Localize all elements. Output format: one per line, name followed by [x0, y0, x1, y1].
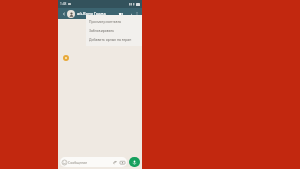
staticText: Просмотр контакта	[89, 19, 121, 24]
button[interactable]: Call	[125, 10, 132, 17]
button[interactable]: Просмотр контакта	[86, 17, 142, 26]
staticText: Добавить ярлык на экран	[89, 37, 132, 42]
button[interactable]: Send voice message	[129, 157, 140, 167]
button[interactable]: Заблокировать	[86, 26, 142, 35]
button[interactable]: Contact photo	[67, 10, 75, 18]
staticText: Сообщение	[68, 160, 88, 165]
button[interactable]: Сообщение	[60, 157, 127, 167]
staticText: Заблокировать	[89, 28, 115, 33]
button[interactable]: More options	[133, 10, 140, 17]
button[interactable]: ай-Ваня Гаджь	[77, 11, 117, 16]
staticText: ай-Ваня Гаджь	[77, 11, 106, 16]
staticText: ▮▮ ▮	[129, 2, 135, 6]
button[interactable]: Back	[60, 10, 67, 17]
button[interactable]: Video call	[117, 10, 124, 17]
staticText: 1:48	[60, 2, 67, 6]
button[interactable]: Добавить ярлык на экран	[86, 35, 142, 44]
